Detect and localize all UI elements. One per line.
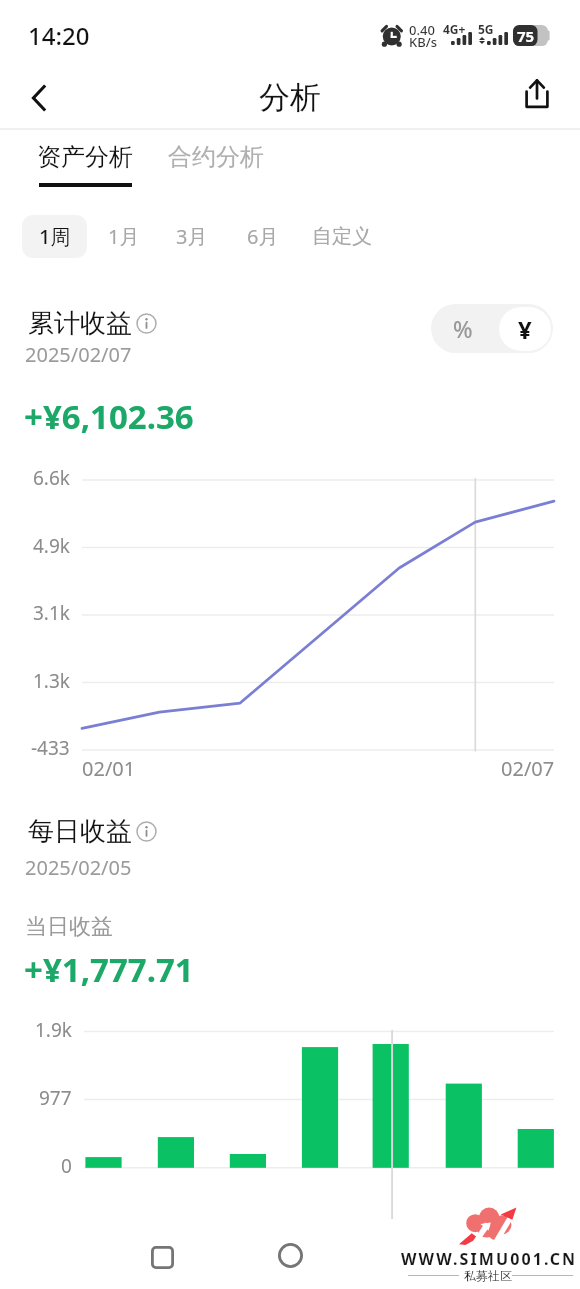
staticText: 自定义	[312, 224, 372, 249]
staticText: 0.40	[409, 21, 435, 39]
button[interactable]: Percent	[431, 304, 495, 353]
button[interactable]: Yuan	[499, 307, 551, 351]
staticText: 3月	[176, 223, 208, 250]
staticText: 977	[39, 1085, 72, 1111]
staticText: 当日收益	[25, 913, 113, 941]
button[interactable]: 合约分析	[162, 138, 270, 176]
button[interactable]: 自定义	[301, 215, 383, 258]
staticText: 3.1k	[33, 600, 70, 626]
staticText: WWW.SIMU001.CN	[401, 1248, 578, 1270]
staticText: 5G	[478, 21, 494, 37]
staticText: KB/s	[409, 33, 438, 51]
staticText: 合约分析	[168, 142, 264, 172]
staticText: 6月	[247, 223, 279, 250]
button[interactable]: Back	[13, 72, 65, 124]
staticText: %	[453, 313, 473, 344]
button[interactable]: Home	[264, 1229, 316, 1281]
staticText: +¥6,102.36	[24, 394, 194, 439]
staticText: 02/07	[501, 755, 555, 782]
staticText: 14:20	[28, 19, 90, 52]
staticText: 累计收益	[28, 307, 132, 340]
staticText: 2025/02/05	[25, 854, 132, 881]
staticText: 4.9k	[33, 533, 70, 559]
button[interactable]: 1月	[91, 215, 156, 258]
staticText: -433	[31, 735, 70, 761]
staticText: 资产分析	[37, 142, 133, 172]
staticText: 每日收益	[28, 815, 132, 848]
staticText: 0	[61, 1153, 72, 1179]
button[interactable]: Recent apps	[136, 1231, 188, 1283]
button[interactable]: 6月	[230, 215, 295, 258]
button[interactable]: 1周	[22, 215, 87, 258]
staticText: 2025/02/07	[25, 341, 132, 368]
staticText: 1.3k	[33, 668, 70, 694]
staticText: 4G+	[443, 21, 466, 37]
staticText: ¥	[518, 313, 532, 346]
staticText: 02/01	[82, 755, 136, 782]
button[interactable]: 资产分析	[31, 138, 139, 191]
staticText: 私募社区	[464, 1268, 512, 1283]
staticText: 1月	[108, 223, 140, 250]
staticText: 分析	[259, 78, 321, 117]
staticText: 75	[517, 26, 535, 46]
staticText: 6.6k	[33, 465, 70, 491]
button[interactable]: Share	[511, 68, 563, 120]
button[interactable]: 3月	[159, 215, 224, 258]
staticText: 1周	[39, 223, 71, 250]
staticText: +¥1,777.71	[24, 947, 194, 992]
staticText: 1.9k	[35, 1017, 72, 1043]
